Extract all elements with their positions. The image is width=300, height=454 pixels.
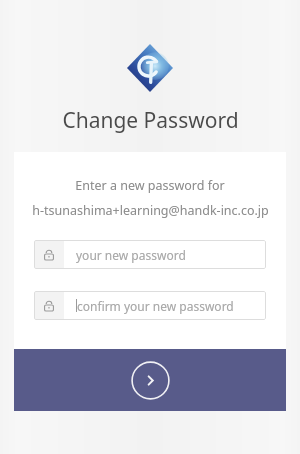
staticText: Change Password	[62, 106, 239, 135]
staticText: h-tsunashima+learning@handk-inc.co.jp	[32, 202, 269, 219]
staticText: confirm your new password	[77, 298, 234, 314]
button[interactable]: your new password	[34, 240, 266, 269]
button[interactable]: Submit new password	[14, 349, 286, 411]
button[interactable]: confirm your new password	[34, 291, 266, 320]
staticText: your new password	[76, 247, 186, 263]
staticText: Enter a new password for	[75, 177, 225, 194]
